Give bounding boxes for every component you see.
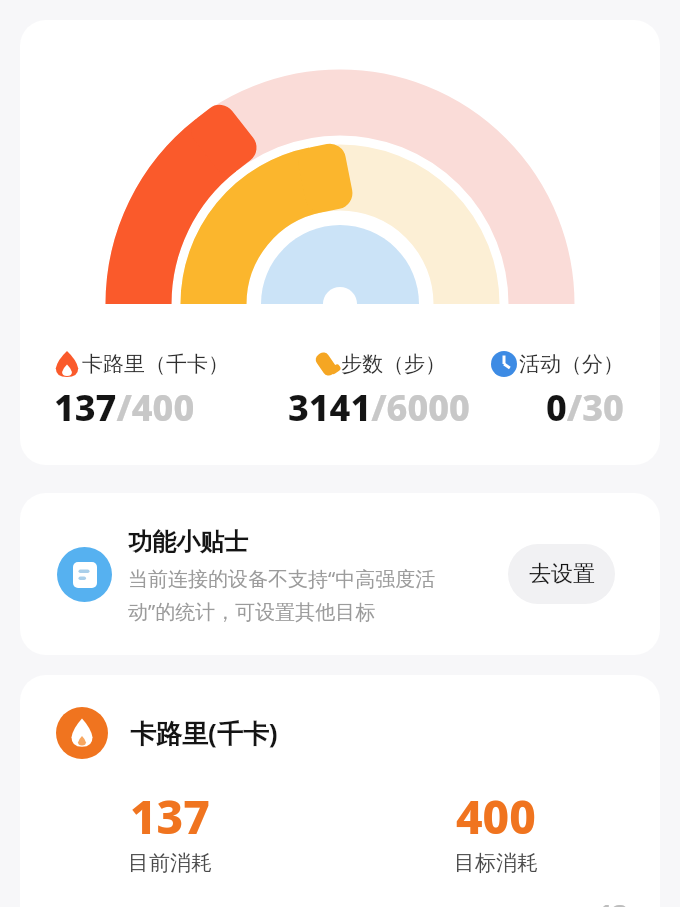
staticText: 当前连接的设备不支持“中高强度活 动”的统计，可设置其他目标 [128, 565, 436, 625]
staticText: 400 [456, 785, 536, 848]
staticText: 去设置 [529, 560, 595, 588]
button[interactable]: 步数（步） [288, 351, 470, 432]
staticText: 目标消耗 [454, 850, 538, 876]
button[interactable]: 卡路里（千卡） [54, 351, 229, 432]
button[interactable]: 去设置 [508, 544, 615, 604]
button[interactable]: 400 [454, 785, 538, 876]
staticText: 卡路里(千卡) [130, 715, 278, 751]
staticText: 卡路里（千卡） [82, 351, 229, 377]
staticText: 13 [598, 896, 628, 907]
staticText: 目前消耗 [128, 850, 212, 876]
button[interactable]: 活动（分） [491, 351, 624, 432]
staticText: 137/400 [54, 383, 195, 432]
staticText: 3141/6000 [288, 383, 470, 432]
staticText: 步数（步） [341, 351, 446, 377]
button[interactable]: 137 [128, 785, 212, 876]
staticText: 0/30 [546, 383, 624, 432]
staticText: 137 [130, 785, 210, 848]
staticText: 功能小贴士 [128, 527, 248, 557]
staticText: 活动（分） [519, 351, 624, 377]
